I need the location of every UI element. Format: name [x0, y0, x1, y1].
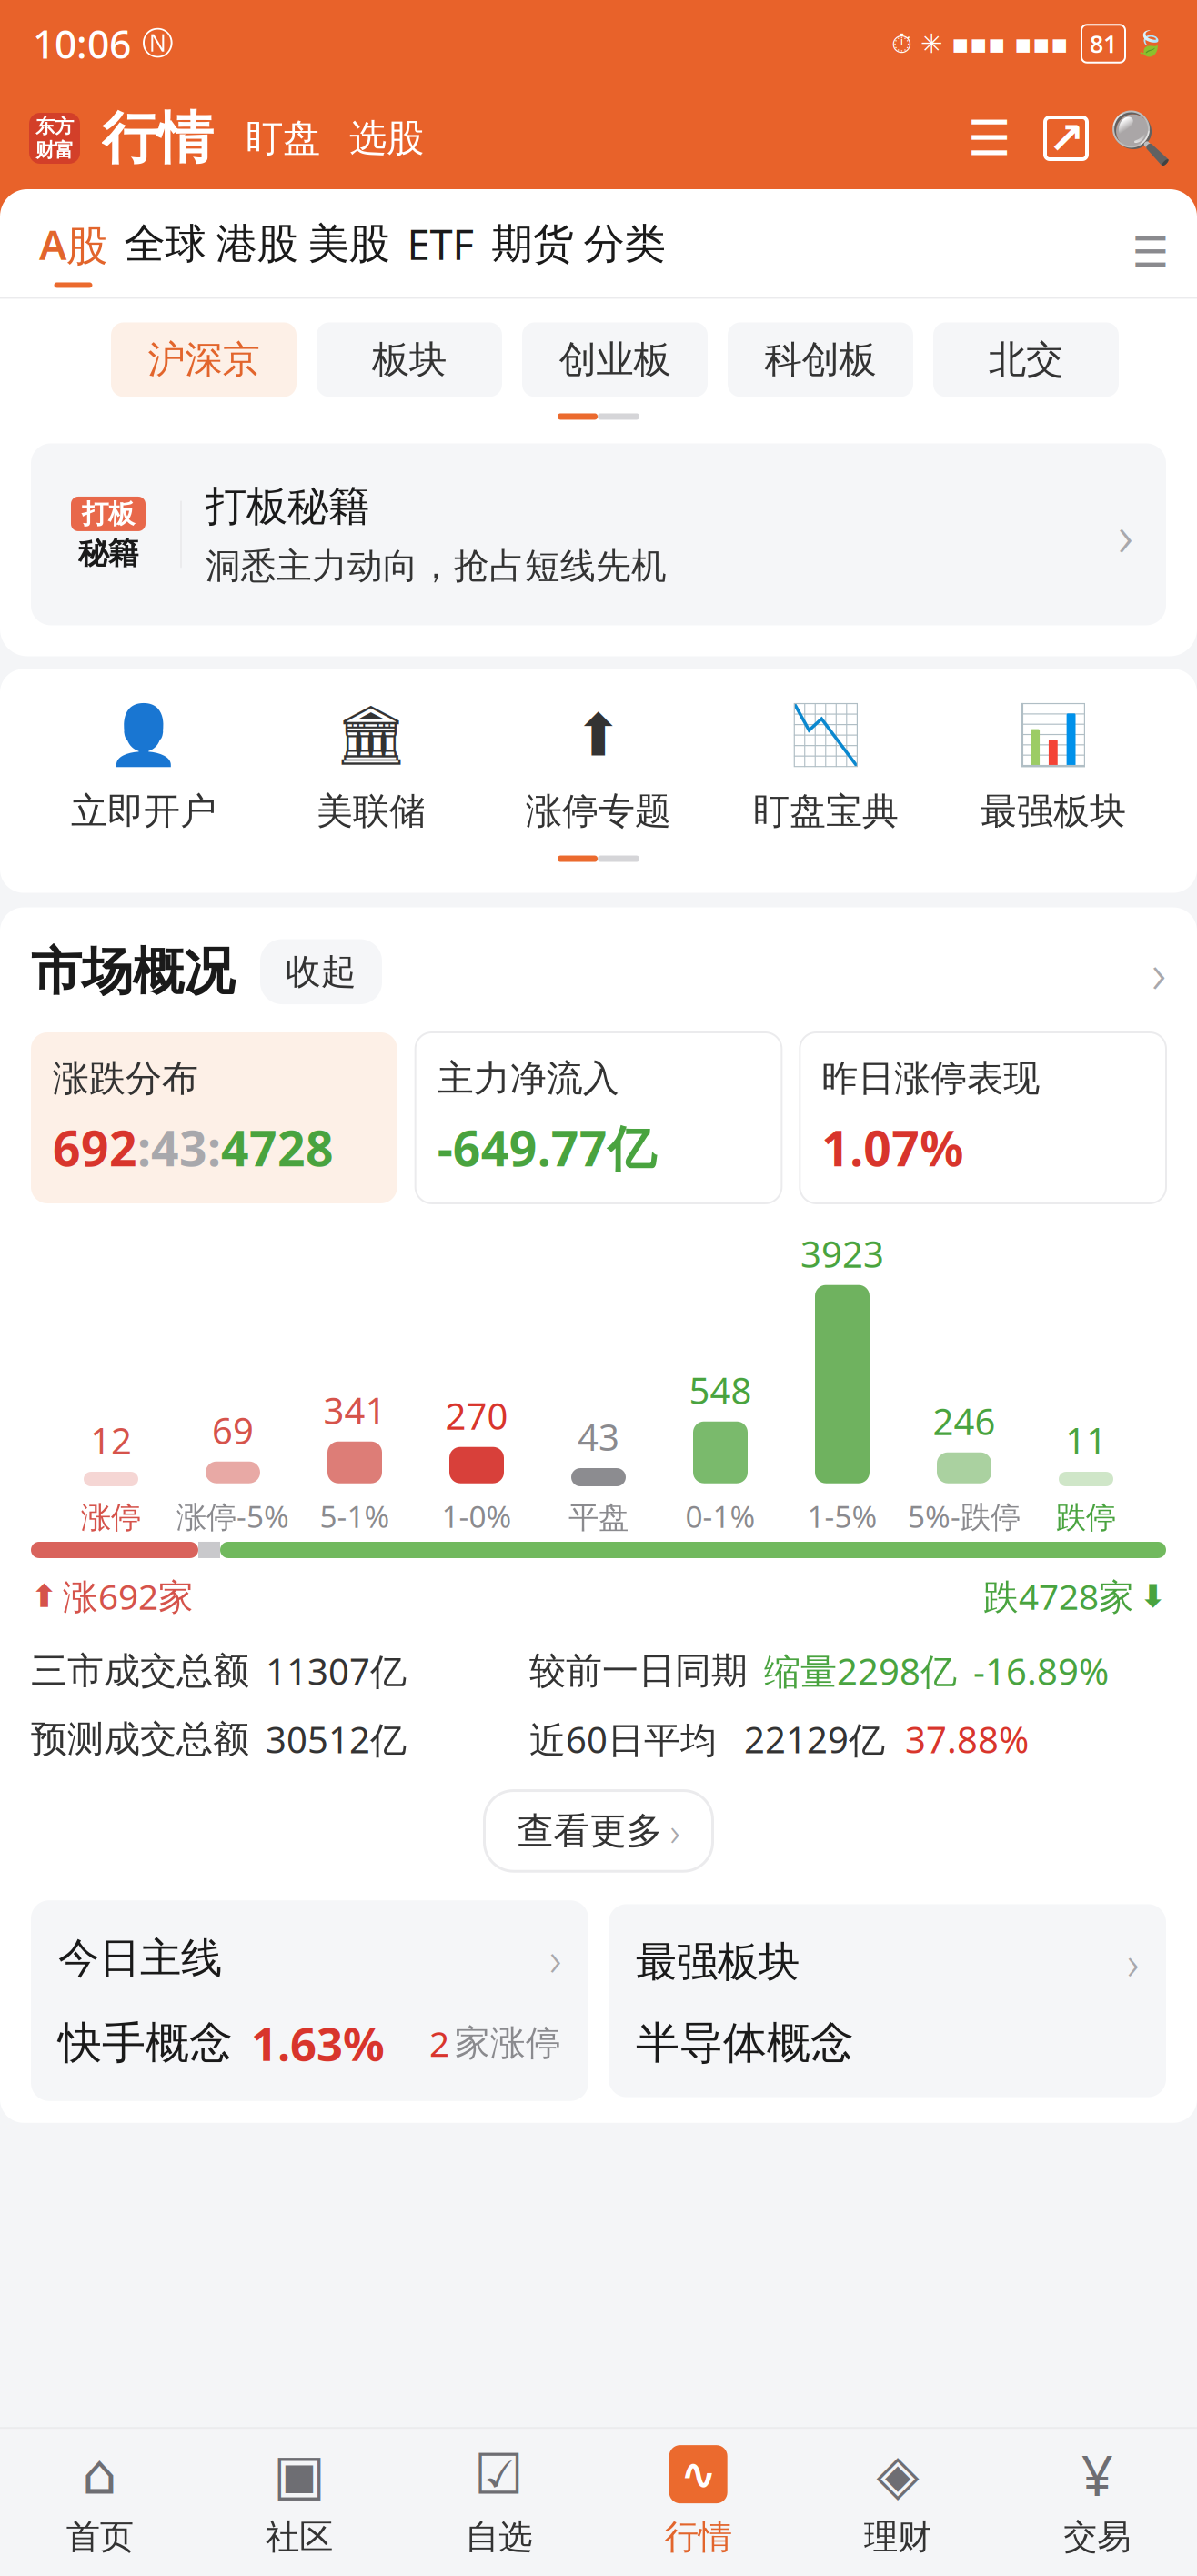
- button[interactable]: ▣: [199, 2445, 399, 2558]
- button[interactable]: 🏛: [257, 700, 485, 834]
- button[interactable]: 打板: [31, 443, 1166, 625]
- staticText: ☑: [474, 2443, 524, 2506]
- button[interactable]: A股: [27, 216, 119, 288]
- button[interactable]: 📉: [712, 700, 940, 834]
- staticText: 3923: [800, 1229, 884, 1278]
- staticText: 打板秘籍: [206, 481, 369, 532]
- button[interactable]: 市场概况详情: [1152, 935, 1166, 1009]
- staticText: 主力净流入: [437, 1056, 619, 1101]
- staticText: A股: [39, 216, 107, 271]
- staticText: :43:: [137, 1115, 221, 1180]
- staticText: ETF: [407, 217, 474, 271]
- staticText: 秘籍: [78, 535, 138, 572]
- button[interactable]: 板块: [317, 322, 502, 397]
- staticText: 跌停: [1056, 1499, 1116, 1536]
- staticText: 30512亿: [266, 1715, 407, 1763]
- staticText: 打板: [82, 497, 135, 530]
- staticText: 4728: [221, 1115, 334, 1180]
- staticText: 社区: [266, 2516, 333, 2558]
- staticText: 快手概念: [58, 2016, 233, 2070]
- staticText: 分类: [583, 219, 665, 269]
- button[interactable]: 搜索: [1113, 111, 1168, 166]
- button[interactable]: 涨跌分布: [31, 1032, 397, 1203]
- staticText: 692: [53, 1115, 137, 1180]
- staticText: ⬇: [1140, 1578, 1166, 1614]
- staticText: 交易: [1064, 2516, 1131, 2558]
- staticText: 近60日平均: [529, 1715, 717, 1763]
- staticText: 1-5%: [807, 1496, 877, 1536]
- staticText: 行情: [102, 104, 213, 172]
- staticText: 69: [212, 1406, 254, 1454]
- button[interactable]: 创业板: [522, 322, 708, 397]
- staticText: 首页: [66, 2516, 133, 2558]
- staticText: 341: [323, 1386, 386, 1434]
- staticText: 11307亿: [266, 1647, 407, 1695]
- staticText: 家涨停: [455, 2022, 561, 2065]
- staticText: 缩量2298亿: [764, 1647, 957, 1695]
- button[interactable]: 👤: [30, 700, 257, 834]
- staticText: 收起: [286, 950, 357, 993]
- button[interactable]: 最强板块: [609, 1904, 1166, 2097]
- button[interactable]: 📊: [940, 700, 1167, 834]
- button[interactable]: 科创板: [728, 322, 913, 397]
- button[interactable]: 排序设置: [962, 111, 1017, 166]
- staticText: 理财: [864, 2516, 931, 2558]
- button[interactable]: 选股: [349, 115, 424, 161]
- button[interactable]: 昨日涨停表现: [800, 1032, 1166, 1203]
- staticText: 548: [689, 1366, 752, 1414]
- staticText: ⬆: [574, 702, 623, 768]
- staticText: 市场概况: [31, 940, 235, 1003]
- button[interactable]: ◈: [798, 2445, 997, 2558]
- button[interactable]: ⌂: [0, 2445, 199, 2558]
- staticText: 行情: [665, 2516, 732, 2558]
- button[interactable]: ∿: [598, 2445, 798, 2558]
- button[interactable]: ☑: [399, 2445, 598, 2558]
- staticText: 最强板块: [636, 1937, 800, 1987]
- button[interactable]: ¥: [998, 2445, 1197, 2558]
- staticText: 5-1%: [320, 1496, 390, 1536]
- staticText: 港股: [216, 219, 298, 269]
- staticText: 涨跌分布: [53, 1056, 198, 1101]
- button[interactable]: 东方财富: [29, 113, 80, 164]
- staticText: ›: [1118, 496, 1133, 573]
- button[interactable]: 分类: [578, 219, 670, 286]
- staticText: 跌4728家: [983, 1573, 1134, 1619]
- staticText: ⏱ ✳ ▪▪▪ ▪▪▪: [891, 29, 1069, 59]
- button[interactable]: ⬆: [485, 700, 712, 834]
- staticText: ▣: [273, 2443, 326, 2506]
- button[interactable]: 港股: [211, 219, 303, 286]
- staticText: 三市成交总额: [31, 1648, 249, 1693]
- button[interactable]: 今日主线: [31, 1900, 588, 2101]
- staticText: 涨停: [81, 1499, 141, 1536]
- staticText: 东方: [35, 114, 74, 138]
- staticText: ›: [1152, 935, 1166, 1009]
- button[interactable]: 查看更多: [484, 1791, 713, 1871]
- button[interactable]: 沪深京: [111, 322, 297, 397]
- button[interactable]: ETF: [395, 217, 487, 288]
- staticText: 美股: [308, 219, 390, 269]
- staticText: ☰: [1132, 229, 1169, 276]
- staticText: 📉: [790, 702, 862, 769]
- button[interactable]: 北交: [933, 322, 1119, 397]
- staticText: ☰: [968, 111, 1011, 166]
- staticText: 盯盘: [246, 115, 320, 161]
- staticText: 预测成交总额: [31, 1717, 249, 1761]
- button[interactable]: 收起: [260, 939, 382, 1004]
- staticText: 270: [445, 1391, 508, 1440]
- button[interactable]: 期货: [487, 219, 578, 286]
- staticText: 较前一日同期: [529, 1648, 748, 1693]
- button[interactable]: 分享: [1039, 111, 1093, 166]
- staticText: -649.77亿: [437, 1115, 656, 1180]
- staticText: ›: [1127, 1931, 1139, 1993]
- button[interactable]: 盯盘: [246, 115, 320, 161]
- staticText: 涨停-5%: [176, 1496, 289, 1536]
- button[interactable]: 全部分类: [1124, 226, 1177, 279]
- staticText: ¥: [1081, 2437, 1113, 2511]
- staticText: 43: [578, 1413, 619, 1461]
- staticText: ∿: [680, 2449, 716, 2499]
- button[interactable]: 主力净流入: [415, 1032, 782, 1203]
- staticText: 涨停专题: [526, 789, 671, 834]
- button[interactable]: 美股: [303, 219, 395, 286]
- staticText: 👤: [107, 702, 180, 769]
- button[interactable]: 全球: [119, 219, 211, 286]
